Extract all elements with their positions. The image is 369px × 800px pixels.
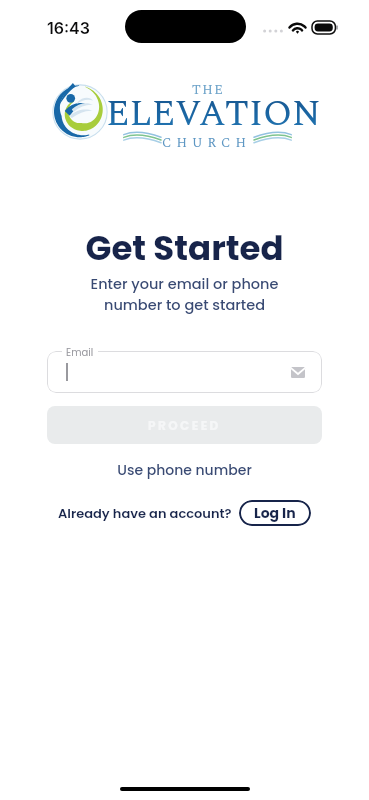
button[interactable]: Log In bbox=[239, 500, 311, 526]
button[interactable]: Email bbox=[47, 351, 322, 393]
staticText: Log In bbox=[254, 503, 296, 523]
staticText: ELEVATION bbox=[106, 87, 321, 142]
staticText: Email bbox=[66, 345, 94, 359]
staticText: Get Started bbox=[0, 224, 369, 272]
staticText: THE bbox=[192, 80, 225, 100]
staticText: 16:43 bbox=[47, 18, 90, 37]
staticText: Already have an account? bbox=[58, 504, 232, 522]
staticText: PROCEED bbox=[148, 417, 221, 434]
button[interactable]: Use phone number bbox=[0, 460, 369, 480]
other: Email bbox=[291, 367, 305, 378]
staticText: Enter your email or phone number to get … bbox=[0, 274, 369, 315]
staticText: CHURCH bbox=[162, 133, 252, 153]
